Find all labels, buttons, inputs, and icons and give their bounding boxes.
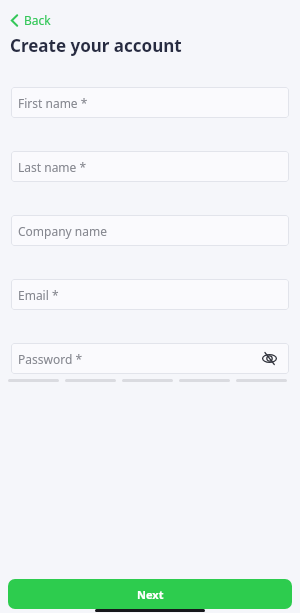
staticText: First name * [18,95,88,111]
button[interactable]: Password * [11,343,289,374]
button[interactable]: Back [10,12,51,28]
staticText: Company name [18,223,107,239]
button[interactable]: First name * [11,87,289,118]
button[interactable]: Last name * [11,151,289,182]
staticText: Email * [18,287,59,303]
button[interactable]: Company name [11,215,289,246]
staticText: Next [137,587,164,602]
staticText: Back [24,12,51,28]
staticText: Password * [18,351,83,367]
button[interactable]: Next [8,579,292,609]
button[interactable]: Email * [11,279,289,310]
staticText: Create your account [10,34,182,57]
staticText: Last name * [18,159,87,175]
